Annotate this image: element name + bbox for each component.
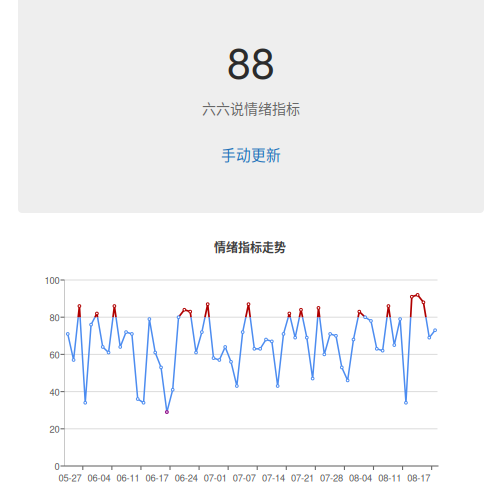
staticText: 06-17 bbox=[146, 471, 169, 484]
staticText: 05-27 bbox=[58, 471, 81, 484]
staticText: 60 bbox=[49, 348, 59, 361]
staticText: 06-24 bbox=[175, 471, 198, 484]
staticText: 0 bbox=[54, 459, 59, 473]
staticText: 06-11 bbox=[116, 471, 139, 484]
staticText: 六六说情绪指标 bbox=[202, 98, 300, 118]
staticText: 08-11 bbox=[378, 471, 401, 484]
staticText: 07-28 bbox=[320, 471, 343, 484]
staticText: 20 bbox=[49, 422, 59, 435]
staticText: 07-01 bbox=[204, 471, 227, 484]
staticText: 100 bbox=[44, 273, 59, 287]
staticText: 07-21 bbox=[291, 471, 314, 484]
staticText: 07-14 bbox=[262, 471, 285, 484]
staticText: 40 bbox=[49, 385, 59, 398]
staticText: 08-04 bbox=[349, 471, 372, 484]
staticText: 88 bbox=[227, 29, 275, 91]
staticText: 07-07 bbox=[233, 471, 256, 484]
staticText: 情绪指标走势 bbox=[214, 238, 286, 256]
staticText: 手动更新 bbox=[221, 143, 281, 165]
staticText: 06-04 bbox=[87, 471, 110, 484]
staticText: 08-17 bbox=[407, 471, 430, 484]
button[interactable]: 手动更新 bbox=[206, 143, 296, 165]
staticText: 80 bbox=[49, 310, 59, 324]
